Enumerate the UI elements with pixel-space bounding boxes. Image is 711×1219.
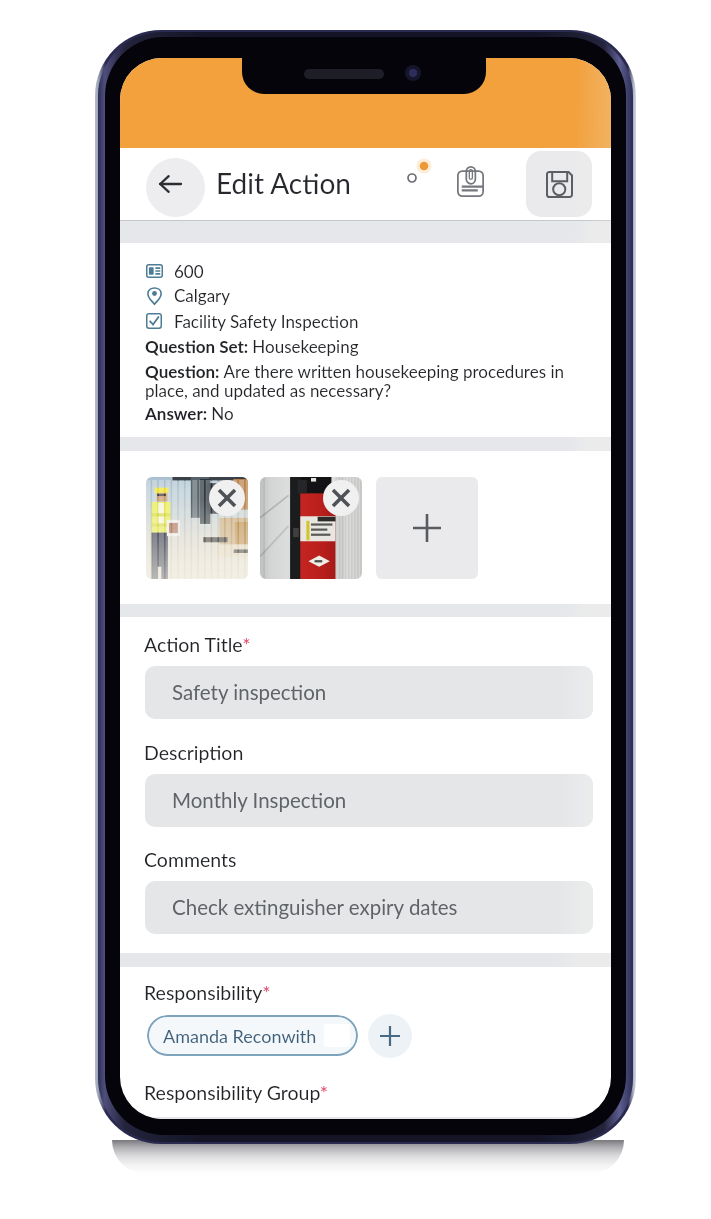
staticText: Comments xyxy=(144,848,237,871)
button[interactable]: Amanda Reconwith xyxy=(147,1015,358,1056)
button[interactable]: Remove photo xyxy=(323,480,359,516)
staticText: 600 xyxy=(174,261,204,281)
staticText: Action Title* xyxy=(144,633,251,656)
button[interactable]: Back xyxy=(146,158,205,217)
button[interactable]: Add photo xyxy=(376,477,478,579)
staticText: Check extinguisher expiry dates xyxy=(172,895,458,920)
staticText: Question: Are there written housekeeping… xyxy=(145,361,577,400)
button[interactable]: Safety inspection xyxy=(145,666,593,719)
button[interactable] xyxy=(260,477,362,579)
button[interactable]: Add responsibility xyxy=(368,1014,412,1058)
staticText: Amanda Reconwith xyxy=(163,1025,317,1047)
staticText: Safety inspection xyxy=(172,680,327,705)
staticText: Responsibility* xyxy=(144,981,271,1004)
button[interactable]: Remove photo xyxy=(209,480,245,516)
staticText: Answer: No xyxy=(145,403,234,423)
staticText: Monthly Inspection xyxy=(172,788,347,813)
staticText: Question Set: Housekeeping xyxy=(145,336,359,356)
button[interactable]: Attachments xyxy=(444,153,496,209)
staticText: Facility Safety Inspection xyxy=(174,311,359,331)
staticText: Calgary xyxy=(174,285,231,305)
button[interactable]: Check extinguisher expiry dates xyxy=(145,881,593,934)
button[interactable]: Save xyxy=(526,151,592,217)
button[interactable] xyxy=(146,477,248,579)
staticText: Edit Action xyxy=(216,166,351,200)
staticText: Responsibility Group* xyxy=(144,1081,329,1104)
button[interactable] xyxy=(145,1117,593,1119)
staticText: Description xyxy=(144,741,244,764)
button[interactable]: Monthly Inspection xyxy=(145,774,593,827)
